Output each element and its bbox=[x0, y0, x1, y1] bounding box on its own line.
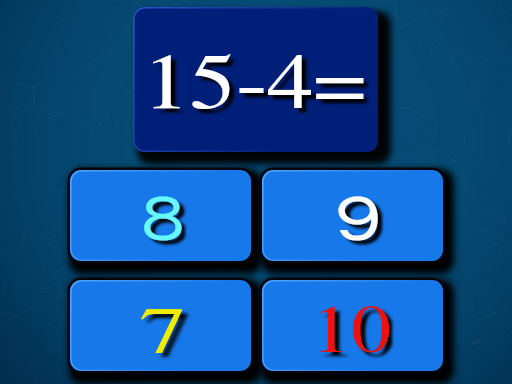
staticText: 8 bbox=[141, 186, 185, 253]
button[interactable]: 9 bbox=[262, 170, 443, 261]
staticText: 7 bbox=[145, 302, 192, 368]
staticText: 15-4= bbox=[143, 45, 366, 122]
staticText: 10 bbox=[316, 302, 396, 369]
button[interactable]: 7 bbox=[70, 280, 251, 371]
staticText: 10 bbox=[311, 298, 391, 365]
button[interactable]: 15-4= bbox=[133, 7, 378, 152]
staticText: 9 bbox=[336, 186, 381, 253]
staticText: 8 bbox=[146, 190, 190, 257]
staticText: 7 bbox=[139, 298, 187, 364]
staticText: 15-4= bbox=[147, 49, 371, 126]
button[interactable]: 8 bbox=[70, 170, 251, 261]
staticText: 9 bbox=[341, 190, 386, 257]
button[interactable]: 10 bbox=[262, 280, 443, 371]
